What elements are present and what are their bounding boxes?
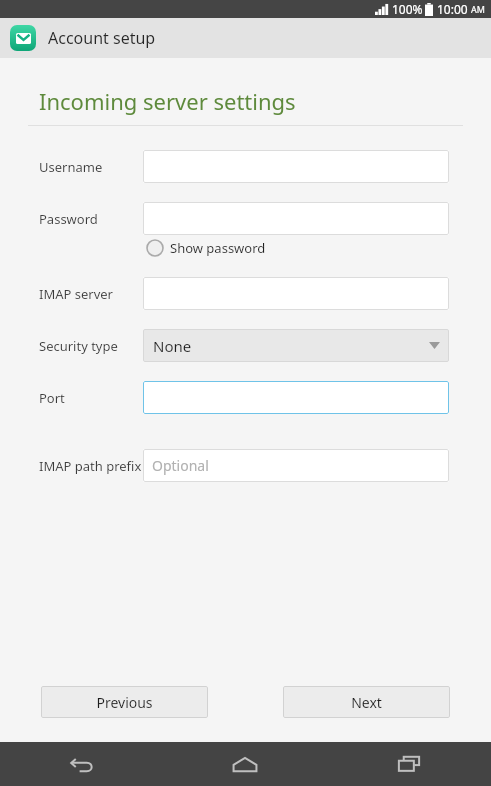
staticText: Username [39, 158, 103, 176]
button[interactable]: Next [283, 686, 450, 718]
button[interactable]: None [143, 329, 449, 362]
staticText: Account setup [48, 27, 156, 49]
staticText: Password [39, 210, 98, 228]
button[interactable] [143, 381, 449, 414]
button[interactable]: Show password [143, 235, 266, 261]
button[interactable]: Back [0, 742, 163, 786]
staticText: Security type [39, 337, 118, 355]
staticText: Port [39, 389, 65, 407]
button[interactable] [143, 202, 449, 235]
staticText: Next [351, 693, 382, 712]
staticText: IMAP path prefix [39, 457, 142, 475]
button[interactable]: Home [163, 742, 327, 786]
staticText: Show password [170, 239, 266, 257]
staticText: AM [471, 3, 485, 15]
other: Email app icon [10, 25, 36, 51]
staticText: None [153, 336, 192, 356]
staticText: Incoming server settings [39, 86, 296, 116]
button[interactable]: Recent apps [327, 742, 491, 786]
staticText: IMAP server [39, 285, 113, 303]
button[interactable]: Previous [41, 686, 208, 718]
staticText: Optional [152, 456, 209, 475]
staticText: Previous [96, 693, 153, 712]
button[interactable] [143, 277, 449, 310]
button[interactable]: Optional [143, 449, 449, 482]
staticText: 10:00 [437, 1, 468, 17]
button[interactable] [143, 150, 449, 183]
staticText: 100% [392, 1, 423, 17]
